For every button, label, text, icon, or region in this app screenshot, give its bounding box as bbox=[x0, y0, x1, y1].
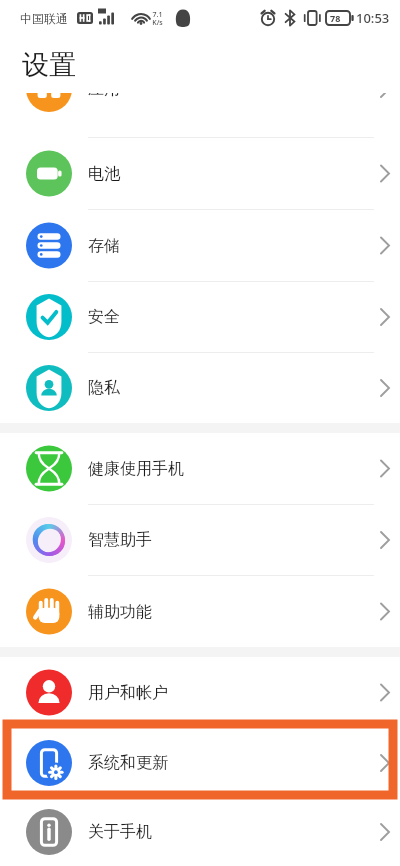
staticText: 应用 bbox=[88, 93, 360, 99]
button[interactable]: 系统和更新 bbox=[0, 728, 400, 798]
staticText: 隐私 bbox=[88, 378, 360, 398]
button[interactable]: 关于手机 bbox=[0, 798, 400, 866]
button[interactable]: 健康使用手机 bbox=[0, 433, 400, 505]
staticText: 78 bbox=[330, 12, 341, 24]
staticText: 设置 bbox=[22, 48, 76, 82]
button[interactable]: 智慧助手 bbox=[0, 505, 400, 576]
button[interactable]: 用户和帐户 bbox=[0, 657, 400, 728]
staticText: 安全 bbox=[88, 307, 360, 327]
other: Highlighted: 系统和更新 bbox=[7, 724, 393, 795]
staticText: 智慧助手 bbox=[88, 530, 360, 550]
staticText: 存储 bbox=[88, 236, 360, 256]
button[interactable]: 存储 bbox=[0, 210, 400, 282]
button[interactable]: 应用 bbox=[0, 93, 400, 137]
staticText: 10:53 bbox=[356, 9, 390, 27]
button[interactable]: 电池 bbox=[0, 138, 400, 210]
button[interactable]: 辅助功能 bbox=[0, 576, 400, 647]
staticText: 中国联通 bbox=[20, 11, 68, 26]
staticText: 7.1 K/s bbox=[152, 10, 163, 27]
staticText: 系统和更新 bbox=[88, 753, 360, 773]
staticText: 关于手机 bbox=[88, 822, 360, 842]
staticText: 用户和帐户 bbox=[88, 683, 360, 703]
staticText: 电池 bbox=[88, 164, 360, 184]
staticText: 健康使用手机 bbox=[88, 459, 360, 479]
staticText: 辅助功能 bbox=[88, 602, 360, 622]
button[interactable]: 隐私 bbox=[0, 353, 400, 423]
button[interactable]: 安全 bbox=[0, 282, 400, 353]
